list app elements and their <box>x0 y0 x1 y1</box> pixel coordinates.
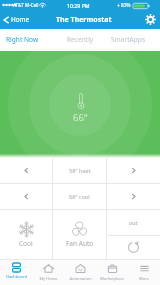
staticText: Automation <box>69 276 92 281</box>
staticText: 66° <box>73 111 88 124</box>
staticText: Cool <box>19 239 33 248</box>
button[interactable]: Dashboard <box>0 260 32 285</box>
button[interactable]: Cool <box>0 210 52 259</box>
button[interactable]: Recently <box>54 29 107 51</box>
staticText: AT&T M-Cell <box>13 2 39 8</box>
staticText: Recently <box>67 35 94 44</box>
button[interactable]: Increase <box>107 184 160 209</box>
button[interactable]: Settings <box>140 10 160 29</box>
staticText: 83% <box>121 2 131 9</box>
button[interactable]: SmartApps <box>107 29 160 51</box>
button[interactable]: Fan Auto <box>53 210 106 259</box>
staticText: Dashboard <box>6 274 27 279</box>
button[interactable]: out <box>107 210 160 235</box>
button[interactable]: Home <box>0 10 35 29</box>
button[interactable]: Marketplace <box>96 260 128 285</box>
staticText: More <box>139 276 149 281</box>
staticText: SmartApps <box>111 35 146 44</box>
staticText: Fan Auto <box>66 239 94 248</box>
staticText: My Home <box>39 276 58 281</box>
staticText: 66° cool <box>69 193 90 200</box>
button[interactable]: Decrease <box>0 184 52 209</box>
staticText: Right Now <box>6 35 39 44</box>
staticText: Home <box>11 15 30 24</box>
staticText: 10:29 PM <box>67 2 90 9</box>
button[interactable]: Decrease <box>0 158 52 183</box>
button[interactable]: My Home <box>32 260 64 285</box>
staticText: Marketplace <box>100 276 124 281</box>
staticText: 58° heat <box>69 167 91 174</box>
button[interactable]: Automation <box>64 260 96 285</box>
button[interactable]: Increase <box>107 158 160 183</box>
button[interactable]: Refresh <box>107 236 160 259</box>
button[interactable]: Right Now <box>0 29 54 51</box>
button[interactable]: More <box>128 260 160 285</box>
staticText: out <box>129 219 138 226</box>
staticText: The Thermostat <box>56 15 112 25</box>
